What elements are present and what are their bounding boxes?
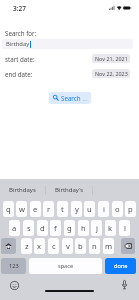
button[interactable]: Birthdays	[0, 179, 45, 201]
button[interactable]: c	[48, 238, 59, 254]
staticText: h	[81, 223, 86, 233]
button[interactable]: x	[34, 238, 45, 254]
button[interactable]: Shift	[1, 238, 16, 254]
staticText: Birthdays	[9, 186, 36, 194]
staticText: z	[25, 241, 29, 251]
button[interactable]: z	[21, 238, 32, 254]
staticText: g	[67, 223, 72, 233]
staticText: q	[6, 204, 11, 214]
button[interactable]: Birthday's	[46, 179, 92, 201]
button[interactable]: y	[71, 201, 82, 217]
button[interactable]: p	[125, 201, 136, 217]
staticText: end date:	[5, 70, 33, 78]
button[interactable]: f	[50, 220, 61, 236]
staticText: u	[87, 204, 92, 214]
button[interactable]: n	[89, 238, 100, 254]
button[interactable]: Birthday	[2, 39, 133, 49]
staticText: Nov 22, 2023	[95, 70, 128, 77]
button[interactable]: h	[78, 220, 89, 236]
staticText: p	[128, 204, 133, 214]
button[interactable]: 123	[1, 258, 26, 274]
staticText: k	[108, 223, 113, 233]
staticText: r	[47, 204, 51, 214]
button[interactable]: Dictation	[120, 280, 129, 290]
staticText: v	[66, 241, 70, 251]
staticText: 123	[9, 262, 19, 270]
button[interactable]: d	[37, 220, 48, 236]
button[interactable]: Backspace	[121, 238, 135, 254]
staticText: Search	[61, 94, 81, 102]
staticText: Birthday	[6, 40, 30, 48]
button[interactable]: a	[9, 220, 20, 236]
button[interactable]: l	[119, 220, 130, 236]
staticText: 3:27	[13, 4, 26, 13]
button[interactable]: k	[105, 220, 116, 236]
staticText: Birthday's	[55, 186, 84, 194]
button[interactable]: i	[98, 201, 109, 217]
staticText: m	[105, 241, 113, 251]
staticText: w	[19, 204, 25, 214]
staticText: s	[27, 223, 31, 233]
button[interactable]: s	[23, 220, 34, 236]
staticText: d	[40, 223, 45, 233]
staticText: o	[115, 204, 120, 214]
staticText: y	[75, 204, 79, 214]
button[interactable]: space	[29, 258, 102, 274]
button[interactable]: v	[62, 238, 73, 254]
button[interactable]: Search	[49, 92, 91, 104]
button[interactable]: Nov 22, 2023	[92, 69, 130, 78]
staticText: t	[61, 204, 64, 214]
staticText: c	[52, 241, 56, 251]
staticText: done	[114, 262, 128, 270]
staticText: Search for:	[5, 29, 37, 37]
staticText: b	[78, 241, 83, 251]
staticText: e	[33, 204, 38, 214]
button[interactable]: t	[57, 201, 68, 217]
staticText: n	[92, 241, 97, 251]
staticText: a	[12, 223, 17, 233]
button[interactable]: q	[3, 201, 14, 217]
button[interactable]: Emoji keyboard	[10, 281, 19, 290]
staticText: Nov 21, 2021	[95, 55, 128, 62]
button[interactable]: m	[103, 238, 114, 254]
staticText: start date:	[5, 55, 35, 63]
button[interactable]: b	[75, 238, 86, 254]
button[interactable]: o	[112, 201, 123, 217]
button[interactable]: done	[105, 258, 136, 274]
staticText: x	[37, 241, 42, 251]
button[interactable]: j	[91, 220, 102, 236]
button[interactable]: u	[84, 201, 95, 217]
button[interactable]: g	[64, 220, 75, 236]
button[interactable]: Nov 21, 2021	[92, 54, 130, 63]
staticText: i	[103, 204, 105, 214]
staticText: f	[54, 223, 57, 233]
button[interactable]: r	[43, 201, 54, 217]
staticText: space	[58, 262, 74, 270]
button[interactable]: e	[30, 201, 41, 217]
staticText: j	[96, 223, 98, 233]
button[interactable]: w	[16, 201, 27, 217]
staticText: ...	[83, 96, 88, 103]
staticText: l	[124, 223, 126, 233]
